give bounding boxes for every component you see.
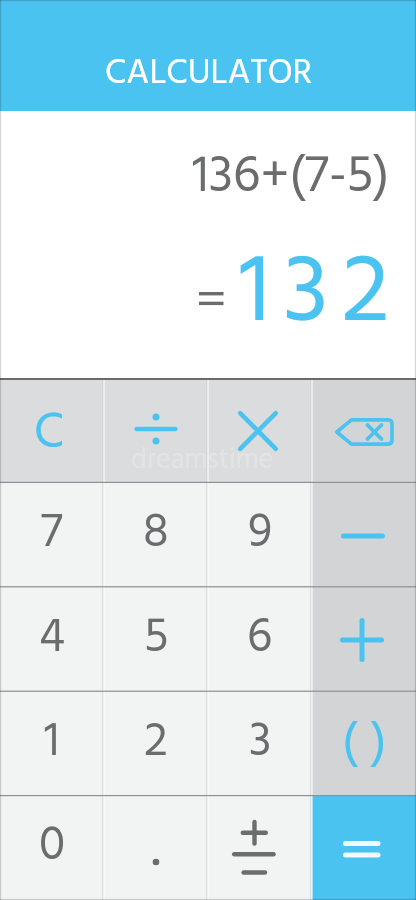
staticText: 136+(7-5) [192, 136, 390, 219]
button[interactable]: 0 [0, 796, 104, 900]
button[interactable]: 7 [0, 483, 104, 588]
staticText: 4 [39, 600, 65, 677]
staticText: dreamstime [131, 438, 274, 483]
button[interactable]: 6 [208, 588, 312, 692]
button[interactable] [104, 796, 208, 900]
staticText: 5 [144, 600, 169, 677]
button[interactable] [312, 378, 416, 483]
staticText: 9 [248, 495, 273, 572]
button[interactable]: 3 [208, 692, 312, 796]
button[interactable] [312, 796, 416, 900]
button[interactable]: 8 [104, 483, 208, 588]
staticText: 132 [239, 218, 403, 373]
staticText: ) [371, 704, 387, 784]
button[interactable]: 4 [0, 588, 104, 692]
staticText: ( [342, 704, 358, 784]
staticText: 3 [249, 704, 272, 781]
button[interactable] [312, 588, 416, 692]
button[interactable]: ( [312, 692, 416, 796]
staticText: 7 [41, 495, 63, 572]
staticText: C [34, 394, 65, 474]
button[interactable]: 5 [104, 588, 208, 692]
staticText: CALCULATOR [105, 46, 312, 103]
staticText: 1 [44, 704, 60, 781]
staticText: 0 [39, 808, 66, 885]
staticText: 8 [143, 495, 169, 572]
staticText: 2 [144, 704, 168, 781]
button[interactable]: 9 [208, 483, 312, 588]
button[interactable] [312, 483, 416, 588]
button[interactable] [208, 796, 312, 900]
button[interactable]: 1 [0, 692, 104, 796]
staticText: 6 [247, 600, 273, 677]
button[interactable] [208, 378, 312, 483]
button[interactable]: 2 [104, 692, 208, 796]
button[interactable]: C [0, 378, 104, 483]
button[interactable] [104, 378, 208, 483]
